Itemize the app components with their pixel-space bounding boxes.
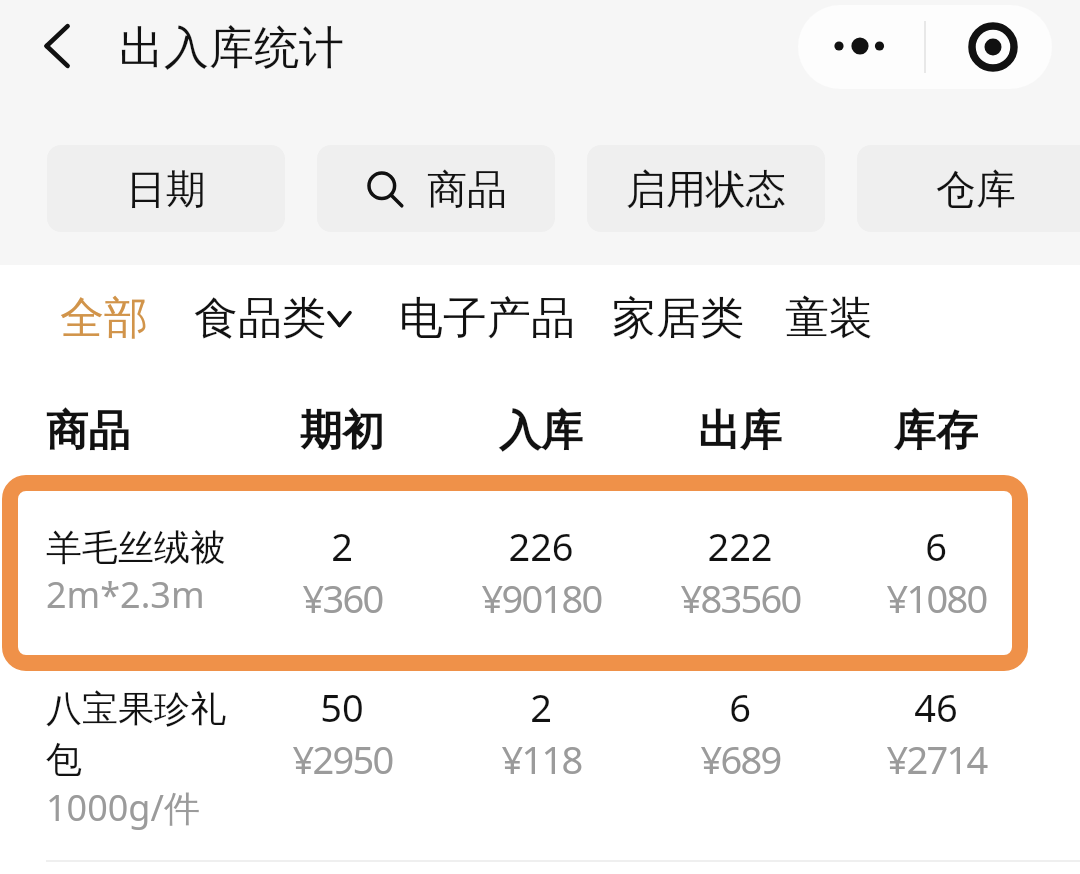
button[interactable]: Close mini program — [926, 5, 1052, 89]
staticText: 家居类 — [612, 291, 744, 346]
staticText: 2 — [331, 520, 353, 572]
staticText: 入库 — [446, 405, 636, 458]
staticText: 2m*2.3m — [46, 570, 205, 619]
staticText: 期初 — [247, 405, 437, 458]
staticText: 仓库 — [936, 164, 1016, 214]
staticText: 商品 — [427, 164, 507, 214]
staticText: ¥689 — [700, 733, 781, 785]
staticText: 6 — [729, 681, 751, 733]
button[interactable] — [0, 675, 1080, 860]
staticText: ¥90180 — [481, 572, 602, 624]
button[interactable]: 电子产品 — [399, 291, 575, 346]
staticText: 1000g/件 — [46, 783, 200, 832]
staticText: 226 — [508, 520, 574, 572]
button[interactable]: 童装 — [785, 291, 873, 346]
button[interactable]: Back — [28, 16, 88, 76]
staticText: ¥1080 — [886, 572, 987, 624]
staticText: 商品 — [46, 405, 130, 458]
button[interactable]: 仓库 — [857, 145, 1080, 232]
staticText: 2 — [530, 681, 552, 733]
staticText: 50 — [320, 681, 364, 733]
button[interactable]: 商品 — [317, 145, 555, 232]
staticText: 童装 — [785, 291, 873, 346]
staticText: ¥360 — [302, 572, 383, 624]
button[interactable]: 启用状态 — [587, 145, 825, 232]
staticText: ¥83560 — [680, 572, 801, 624]
staticText: 6 — [925, 520, 947, 572]
staticText: 食品类 — [194, 291, 326, 346]
button[interactable]: More options — [798, 5, 924, 89]
staticText: ¥118 — [501, 733, 582, 785]
staticText: 羊毛丝绒被 — [46, 525, 226, 570]
staticText: 启用状态 — [626, 164, 786, 214]
button[interactable]: 全部 — [60, 291, 148, 346]
staticText: 八宝果珍礼包 — [46, 686, 231, 783]
button[interactable] — [2, 475, 1028, 671]
staticText: 222 — [707, 520, 773, 572]
staticText: 出入库统计 — [119, 20, 344, 77]
staticText: ¥2950 — [292, 733, 393, 785]
button[interactable]: 日期 — [47, 145, 285, 232]
staticText: 日期 — [126, 164, 206, 214]
button[interactable]: 食品类 — [194, 291, 352, 346]
staticText: ¥2714 — [886, 733, 987, 785]
staticText: 电子产品 — [399, 291, 575, 346]
staticText: 46 — [914, 681, 958, 733]
staticText: 全部 — [60, 291, 148, 346]
button[interactable]: 家居类 — [612, 291, 744, 346]
staticText: 出库 — [645, 405, 835, 458]
staticText: 库存 — [841, 405, 1031, 458]
